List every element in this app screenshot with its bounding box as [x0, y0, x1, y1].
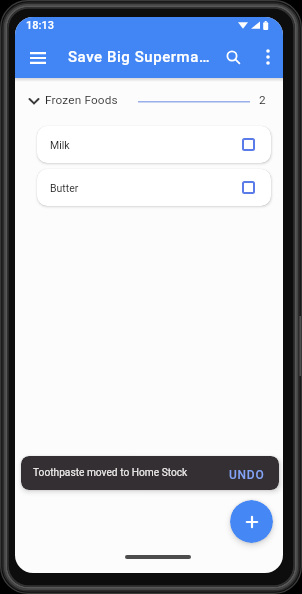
- staticText: Toothpaste moved to Home Stock: [33, 467, 188, 479]
- button[interactable]: [242, 138, 255, 151]
- button[interactable]: UNDO: [215, 468, 279, 482]
- button[interactable]: [230, 500, 273, 543]
- button[interactable]: [221, 45, 246, 69]
- button[interactable]: Frozen Foods: [15, 88, 283, 114]
- staticText: Frozen Foods: [45, 93, 118, 107]
- button[interactable]: Milk: [37, 126, 271, 163]
- button[interactable]: Butter: [37, 169, 271, 206]
- button[interactable]: [256, 45, 279, 69]
- staticText: Butter: [50, 182, 79, 194]
- staticText: 18:13: [26, 19, 54, 32]
- staticText: 2: [259, 93, 266, 107]
- button[interactable]: [23, 46, 52, 69]
- staticText: UNDO: [229, 468, 265, 482]
- button[interactable]: [242, 181, 255, 194]
- staticText: Milk: [50, 139, 70, 151]
- staticText: Save Big Superma…: [68, 48, 211, 66]
